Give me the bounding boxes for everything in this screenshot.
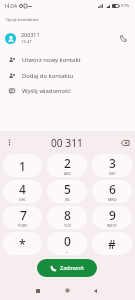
button[interactable]: Home xyxy=(60,283,75,298)
staticText: 1 xyxy=(19,158,26,174)
staticText: 5 xyxy=(64,181,71,197)
staticText: 3 xyxy=(109,155,116,171)
staticText: DEF xyxy=(109,171,116,176)
button[interactable]: # xyxy=(92,232,132,255)
staticText: + xyxy=(66,249,69,254)
staticText: GHI xyxy=(19,197,26,202)
staticText: Wyślij wiadomość xyxy=(22,87,71,95)
staticText: * xyxy=(19,236,26,252)
button[interactable]: * xyxy=(3,232,42,255)
staticText: Zadzwoń xyxy=(60,264,84,272)
button[interactable]: More options xyxy=(3,136,16,149)
staticText: MNO xyxy=(108,197,117,202)
staticText: Opcje kontaktów xyxy=(6,17,39,23)
staticText: Dodaj do kontaktu xyxy=(22,72,74,80)
staticText: TUV xyxy=(64,223,71,228)
staticText: 67% xyxy=(121,3,130,9)
staticText: 8 xyxy=(64,207,71,223)
staticText: 7 xyxy=(20,207,27,223)
staticText: 9 xyxy=(109,207,116,223)
button[interactable]: Backspace xyxy=(118,136,131,149)
staticText: # xyxy=(108,236,116,252)
button[interactable]: 1 xyxy=(3,154,42,177)
staticText: 200311 xyxy=(21,31,40,38)
button[interactable]: Back xyxy=(88,283,103,298)
staticText: 2 xyxy=(64,155,71,171)
button[interactable]: Dodaj do kontaktu xyxy=(0,68,135,83)
button[interactable]: Recents xyxy=(30,283,45,298)
staticText: 15:47 xyxy=(21,39,32,45)
staticText: PQRS xyxy=(18,223,28,228)
staticText: 0 xyxy=(64,233,71,249)
staticText: 4 xyxy=(19,181,26,197)
staticText: WXYZ xyxy=(107,223,117,228)
staticText: 14:04 xyxy=(4,3,17,10)
button[interactable]: 8 xyxy=(47,206,87,229)
button[interactable]: 2 xyxy=(47,154,87,177)
staticText: Utwórz nowy kontakt xyxy=(22,56,81,64)
button[interactable]: 3 xyxy=(92,154,132,177)
staticText: ABC xyxy=(64,171,71,176)
staticText: 6 xyxy=(109,181,116,197)
button[interactable]: 200311 xyxy=(0,27,135,49)
button[interactable]: 6 xyxy=(92,180,132,203)
button[interactable]: Zadzwoń xyxy=(37,259,97,277)
button[interactable]: 0 xyxy=(47,232,87,255)
button[interactable]: Call xyxy=(115,30,131,46)
button[interactable]: Utwórz nowy kontakt xyxy=(0,52,135,67)
button[interactable]: 9 xyxy=(92,206,132,229)
button[interactable]: 5 xyxy=(47,180,87,203)
button[interactable]: 4 xyxy=(3,180,42,203)
button[interactable]: Wyślij wiadomość xyxy=(0,83,135,98)
staticText: 00 311 xyxy=(51,136,83,150)
staticText: JKL xyxy=(65,197,71,202)
button[interactable]: 7 xyxy=(3,206,42,229)
